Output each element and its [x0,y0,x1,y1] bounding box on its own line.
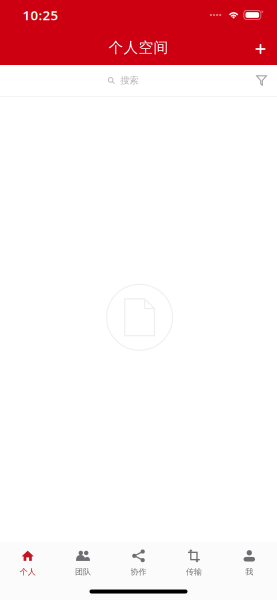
button[interactable]: New [244,29,277,66]
button[interactable]: 传输 [166,542,222,583]
staticText: 团队 [75,567,91,577]
staticText: 10:25 [22,6,58,24]
button[interactable]: 个人 [0,542,55,583]
staticText: 传输 [186,567,202,577]
staticText: 个人 [20,567,36,577]
staticText: 协作 [130,567,146,577]
button[interactable]: 搜索 [108,75,138,86]
staticText: 个人空间 [108,38,168,56]
button[interactable]: Filter [246,65,277,96]
button[interactable]: 团队 [55,542,111,583]
button[interactable]: 协作 [111,542,166,583]
staticText: 我 [245,567,253,577]
button[interactable]: 我 [222,542,277,583]
staticText: 搜索 [120,75,138,86]
